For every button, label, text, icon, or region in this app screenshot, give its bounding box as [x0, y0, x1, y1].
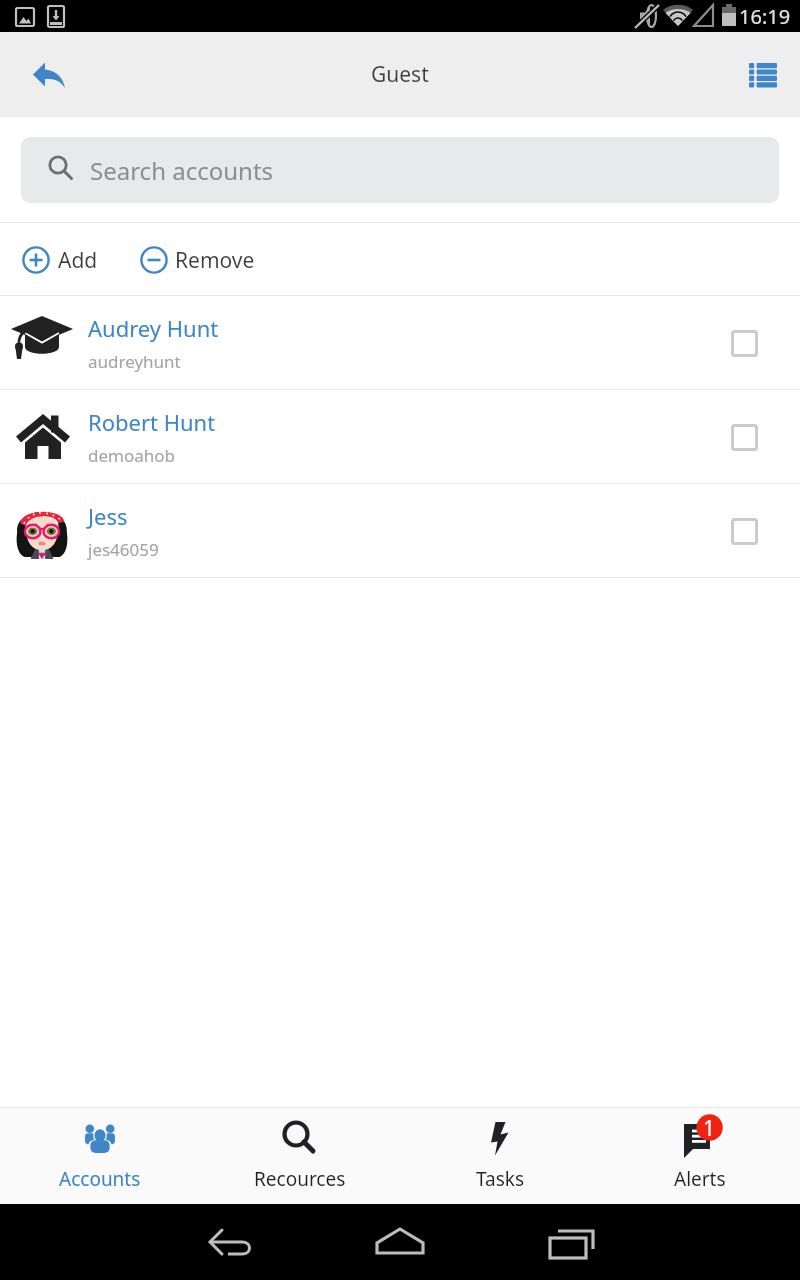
staticText: 1: [703, 1114, 716, 1140]
button[interactable]: Select Jess: [721, 508, 767, 554]
staticText: Tasks: [476, 1166, 525, 1192]
staticText: Robert Hunt: [88, 407, 216, 437]
button[interactable]: 1: [600, 1107, 800, 1204]
button[interactable]: List view: [737, 51, 789, 103]
staticText: Alerts: [674, 1166, 726, 1192]
button[interactable]: Select Robert Hunt: [721, 414, 767, 460]
button[interactable]: Audrey Hunt: [0, 296, 800, 390]
staticText: Search accounts: [90, 154, 274, 187]
button[interactable]: Add: [21, 245, 98, 275]
button[interactable]: Robert Hunt: [0, 390, 800, 484]
staticText: Jess: [88, 501, 128, 531]
staticText: Audrey Hunt: [88, 313, 219, 343]
staticText: audreyhunt: [88, 350, 181, 373]
staticText: Remove: [175, 246, 255, 275]
button[interactable]: Search accounts: [21, 137, 779, 203]
button[interactable]: Tasks: [400, 1107, 600, 1204]
button[interactable]: Back: [21, 49, 77, 105]
staticText: 16:19: [739, 3, 791, 30]
staticText: Guest: [371, 60, 429, 89]
button[interactable]: Remove: [139, 245, 255, 275]
button[interactable]: Recources: [200, 1107, 400, 1204]
button[interactable]: Jess: [0, 484, 800, 578]
staticText: Accounts: [59, 1166, 141, 1192]
button[interactable]: Select Audrey Hunt: [721, 320, 767, 366]
button[interactable]: Accounts: [0, 1107, 200, 1204]
staticText: demoahob: [88, 444, 176, 467]
staticText: jes46059: [88, 538, 159, 561]
staticText: Recources: [254, 1166, 346, 1192]
staticText: Add: [58, 246, 98, 275]
